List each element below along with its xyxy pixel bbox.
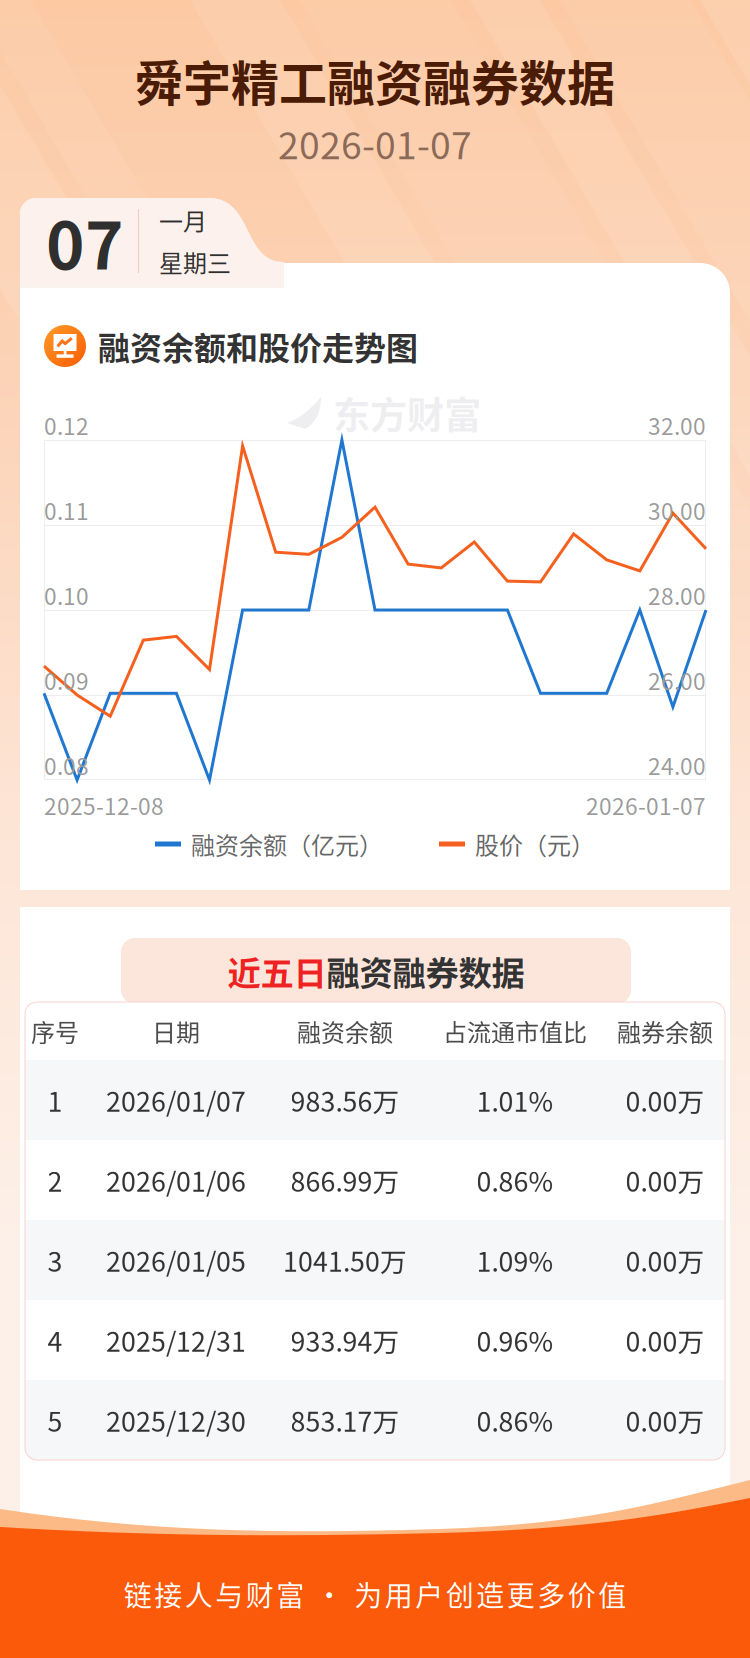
staticText: 4 [47,1321,62,1359]
staticText: 一月 [159,203,207,237]
staticText: 0.00万 [625,1081,704,1119]
staticText: 933.94万 [290,1321,399,1359]
staticText: 2026-01-07 [278,116,472,170]
staticText: 30.00 [648,494,706,526]
staticText: 24.00 [648,749,706,781]
staticText: 占流通市值比 [443,1014,587,1048]
staticText: 0.00万 [625,1161,704,1199]
staticText: 2025/12/31 [106,1321,246,1359]
staticText: 2025-12-08 [44,789,164,821]
staticText: 0.10 [44,579,89,611]
staticText: 0.11 [44,494,89,526]
staticText: 2025/12/30 [106,1401,246,1439]
staticText: 融资余额 [297,1014,393,1048]
staticText: 0.00万 [625,1241,704,1279]
staticText: 0.86% [476,1161,553,1199]
staticText: 0.86% [476,1401,553,1439]
staticText: 1 [47,1081,62,1119]
staticText: 0.09 [44,664,89,696]
staticText: 3 [47,1241,62,1279]
staticText: 866.99万 [290,1161,399,1199]
staticText: 28.00 [648,579,706,611]
staticText: 983.56万 [290,1081,399,1119]
staticText: 2 [47,1161,62,1199]
staticText: 链接人与财富 · 为用户创造更多价值 [124,1574,626,1614]
staticText: 0.00万 [625,1401,704,1439]
staticText: 融券余额 [617,1014,713,1048]
staticText: 32.00 [648,409,706,441]
staticText: 融资余额和股价走势图 [98,323,418,369]
staticText: 2026-01-07 [586,789,706,821]
staticText: 股价（元） [475,827,595,861]
staticText: 853.17万 [290,1401,399,1439]
staticText: 东方财富 [333,386,481,440]
staticText: 2026/01/06 [106,1161,246,1199]
staticText: 0.12 [44,409,89,441]
staticText: 0.00万 [625,1321,704,1359]
staticText: 1041.50万 [283,1241,407,1279]
staticText: 融资余额（亿元） [191,827,383,861]
staticText: 序号 [31,1014,79,1048]
staticText: 07 [46,194,124,288]
staticText: 26.00 [648,664,706,696]
staticText: 5 [47,1401,62,1439]
staticText: 近五日 [227,947,326,995]
staticText: 2026/01/05 [106,1241,246,1279]
staticText: 0.96% [476,1321,553,1359]
staticText: 1.01% [476,1081,553,1119]
staticText: 日期 [152,1014,200,1048]
staticText: 2026/01/07 [106,1081,246,1119]
staticText: 1.09% [476,1241,553,1279]
staticText: 0.08 [44,749,89,781]
staticText: 星期三 [159,244,231,279]
staticText: 舜宇精工融资融券数据 [135,45,615,115]
staticText: 融资融券数据 [326,947,524,995]
